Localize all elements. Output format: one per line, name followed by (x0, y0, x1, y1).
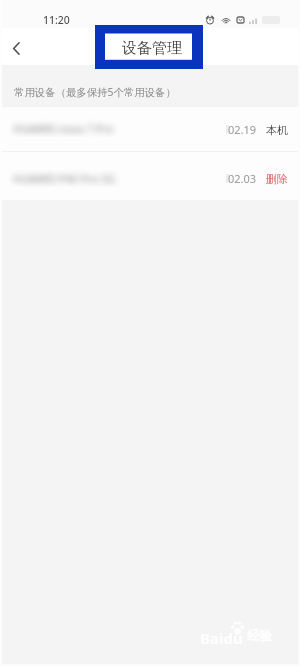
staticText: HUAWEI P40 Pro 5G (13, 171, 116, 186)
staticText: 常用设备（最多保持5个常用设备） (14, 85, 176, 99)
button[interactable]: HUAWEI nova 7 Pro (0, 107, 300, 151)
button[interactable]: HUAWEI P40 Pro 5G (0, 151, 300, 200)
staticText: HUAWEI nova 7 Pro (13, 121, 114, 136)
staticText: 经验 (247, 628, 272, 644)
staticText: 02.03 (228, 171, 257, 186)
staticText: 02.19 (228, 122, 257, 137)
button[interactable]: Back (3, 35, 30, 62)
button[interactable]: 设备管理 (122, 39, 182, 58)
staticText: Baidu (200, 628, 243, 648)
staticText: 本机 (266, 123, 288, 137)
staticText: 删除 (266, 172, 288, 186)
staticText: 11:20 (43, 13, 70, 27)
